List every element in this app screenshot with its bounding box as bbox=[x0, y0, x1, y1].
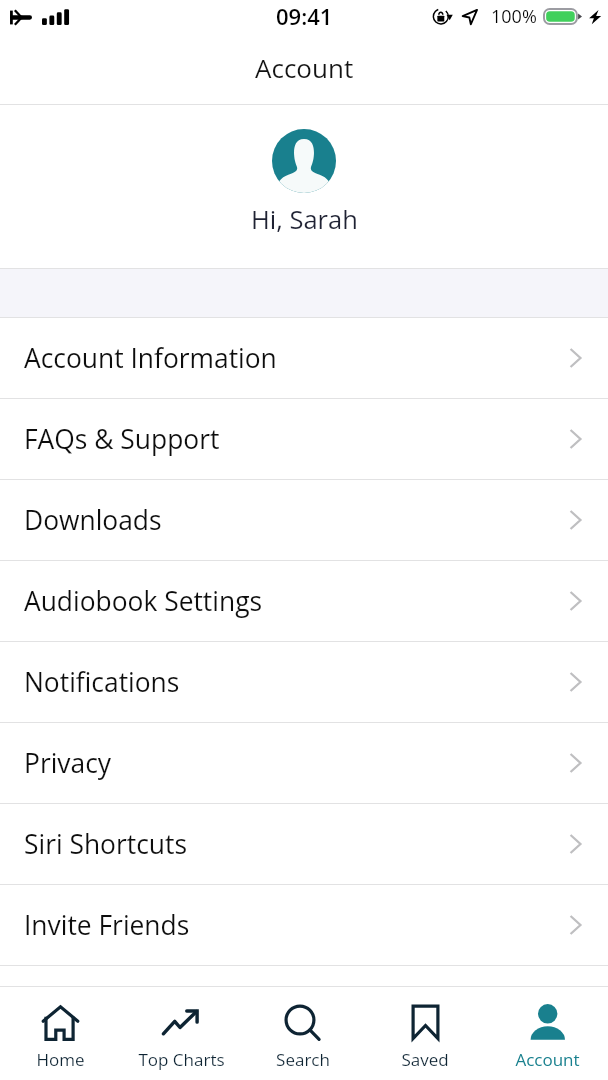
staticText: Invite Friends bbox=[24, 907, 190, 943]
button[interactable]: Notifications bbox=[0, 642, 608, 722]
button[interactable]: Top Charts bbox=[121, 987, 242, 1080]
staticText: Search bbox=[276, 1048, 330, 1071]
button[interactable]: Profile picture bbox=[272, 129, 336, 193]
button[interactable]: FAQs & Support bbox=[0, 399, 608, 479]
button[interactable]: Privacy bbox=[0, 723, 608, 803]
button[interactable]: Siri Shortcuts bbox=[0, 804, 608, 884]
button[interactable]: Account bbox=[486, 987, 608, 1080]
button[interactable]: Home bbox=[0, 987, 121, 1080]
button[interactable]: Search bbox=[242, 987, 364, 1080]
button[interactable]: Account Information bbox=[0, 318, 608, 398]
staticText: Account bbox=[255, 50, 354, 85]
staticText: Account bbox=[515, 1048, 580, 1071]
staticText: Downloads bbox=[24, 502, 162, 538]
staticText: Audiobook Settings bbox=[24, 583, 263, 619]
staticText: 09:41 bbox=[276, 1, 333, 31]
staticText: Home bbox=[36, 1048, 85, 1071]
button[interactable]: Invite Friends bbox=[0, 885, 608, 965]
button[interactable]: Downloads bbox=[0, 480, 608, 560]
staticText: Privacy bbox=[24, 745, 112, 781]
staticText: Top Charts bbox=[138, 1048, 225, 1071]
staticText: Siri Shortcuts bbox=[24, 826, 187, 862]
staticText: Saved bbox=[401, 1048, 449, 1071]
staticText: FAQs & Support bbox=[24, 421, 220, 457]
button[interactable]: Saved bbox=[364, 987, 486, 1080]
staticText: Notifications bbox=[24, 664, 180, 700]
staticText: Account Information bbox=[24, 340, 277, 376]
staticText: Hi, Sarah bbox=[251, 202, 358, 237]
button[interactable]: Audiobook Settings bbox=[0, 561, 608, 641]
staticText: 100% bbox=[491, 4, 537, 29]
